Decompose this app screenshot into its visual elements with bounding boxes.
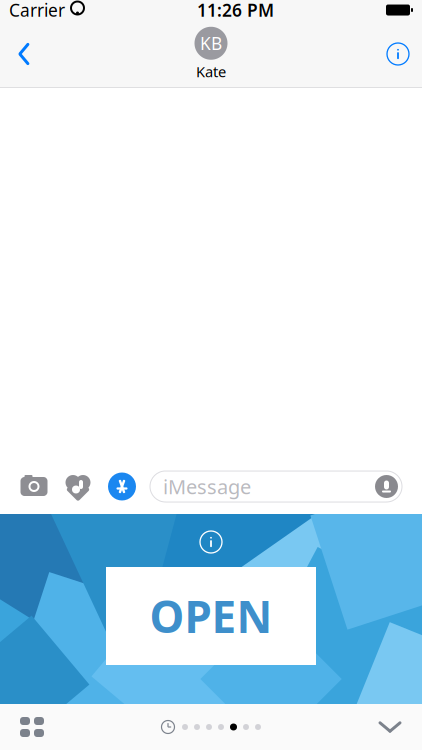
- button[interactable]: Back: [2, 32, 46, 76]
- button[interactable]: Apps: [100, 466, 144, 506]
- button[interactable]: About this app: [194, 525, 228, 559]
- staticText: OPEN: [149, 587, 272, 645]
- button[interactable]: Camera: [12, 466, 56, 506]
- button[interactable]: App drawer: [6, 705, 58, 749]
- staticText: Kate: [196, 62, 226, 81]
- staticText: Carrier: [9, 0, 65, 21]
- button[interactable]: OPEN: [106, 567, 316, 665]
- staticText: 11:26 PM: [197, 0, 274, 21]
- staticText: iMessage: [163, 473, 251, 500]
- button[interactable]: Expand: [364, 705, 416, 749]
- button[interactable]: Dictate: [375, 475, 398, 498]
- button[interactable]: Digital Touch: [56, 466, 100, 506]
- button[interactable]: Details: [376, 32, 420, 76]
- staticText: KB: [200, 32, 222, 55]
